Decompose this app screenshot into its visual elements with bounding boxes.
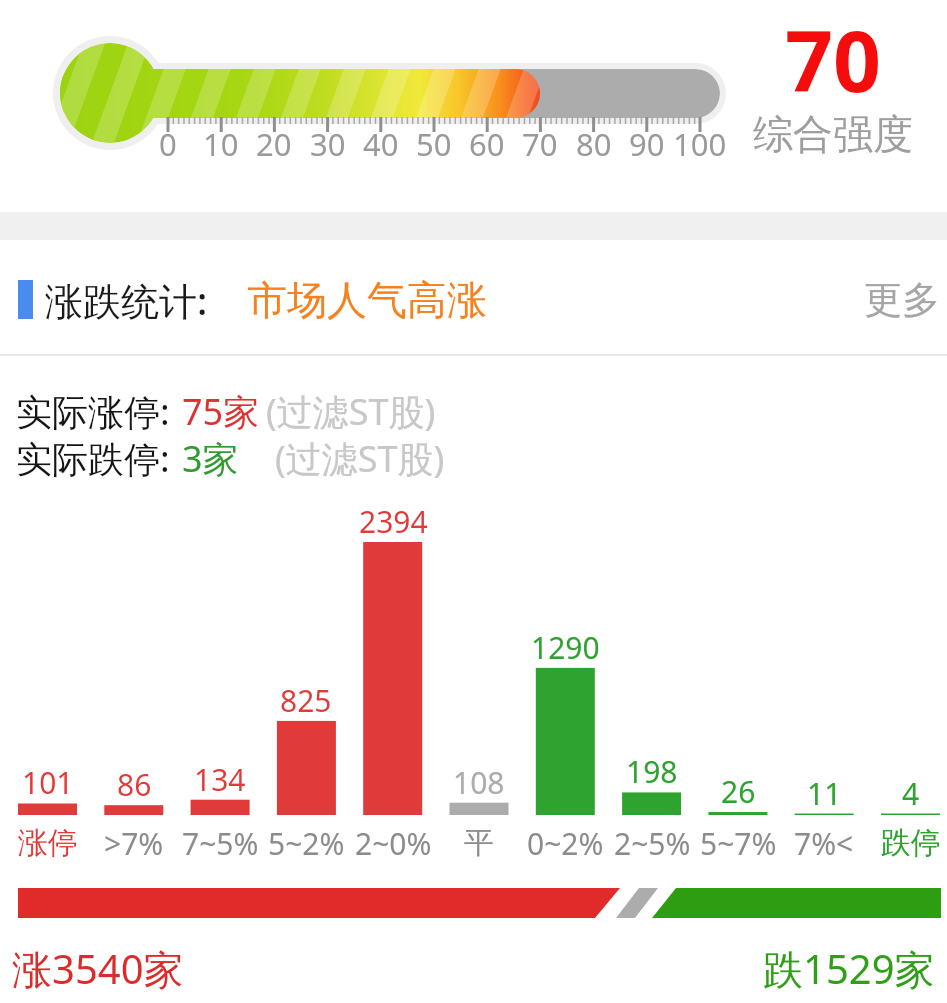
- staticText: 更多: [864, 276, 940, 324]
- staticText: 5~7%: [700, 823, 777, 864]
- staticText: 20: [256, 123, 292, 165]
- staticText: 涨跌统计:: [45, 274, 208, 326]
- staticText: 10: [203, 123, 239, 165]
- staticText: 实际跌停:: [16, 434, 170, 483]
- staticText: 86: [117, 764, 152, 805]
- staticText: 1290: [531, 627, 600, 668]
- staticText: 2394: [359, 501, 428, 542]
- staticText: 2~0%: [355, 823, 432, 864]
- staticText: 市场人气高涨: [247, 275, 487, 325]
- staticText: 100: [673, 123, 727, 165]
- staticText: 50: [416, 123, 452, 165]
- staticText: 综合强度: [753, 109, 913, 159]
- staticText: 26: [721, 771, 756, 812]
- staticText: 11: [807, 773, 842, 814]
- staticText: 平: [464, 824, 494, 862]
- staticText: 108: [453, 762, 505, 803]
- staticText: 0: [159, 123, 177, 165]
- staticText: 825: [280, 680, 332, 721]
- staticText: >7%: [104, 823, 164, 864]
- staticText: 40: [363, 123, 399, 165]
- staticText: 198: [626, 751, 678, 792]
- staticText: (过滤ST股): [266, 387, 436, 436]
- staticText: 75家: [182, 387, 260, 436]
- staticText: 4: [902, 773, 920, 814]
- staticText: 70: [522, 123, 558, 165]
- staticText: 跌停: [881, 824, 941, 862]
- staticText: 5~2%: [268, 823, 345, 864]
- staticText: 30: [310, 123, 346, 165]
- staticText: 实际涨停:: [16, 387, 170, 436]
- staticText: (过滤ST股): [275, 434, 445, 483]
- staticText: 134: [194, 759, 246, 800]
- staticText: 7%<: [794, 823, 854, 864]
- staticText: 70: [785, 2, 882, 116]
- staticText: 90: [629, 123, 665, 165]
- staticText: 60: [469, 123, 505, 165]
- staticText: 3家: [182, 434, 239, 483]
- staticText: 涨停: [18, 824, 78, 862]
- staticText: 7~5%: [182, 823, 259, 864]
- staticText: 0~2%: [527, 823, 604, 864]
- staticText: 101: [22, 762, 74, 803]
- staticText: 涨3540家: [12, 941, 184, 996]
- staticText: 2~5%: [614, 823, 691, 864]
- staticText: 跌1529家: [763, 941, 935, 996]
- button[interactable]: 更多: [320, 262, 940, 338]
- staticText: 80: [576, 123, 612, 165]
